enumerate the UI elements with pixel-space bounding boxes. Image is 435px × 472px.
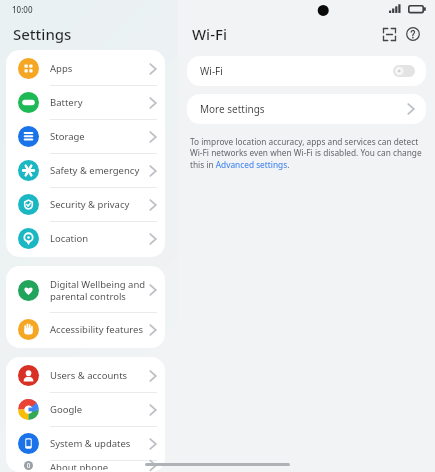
staticText: Users & accounts — [50, 369, 148, 382]
staticText: Google — [50, 403, 148, 416]
staticText: Storage — [50, 130, 148, 143]
staticText: Settings — [13, 24, 72, 44]
staticText: Wi-Fi — [200, 64, 393, 78]
staticText: Digital Wellbeing and parental controls — [50, 278, 148, 303]
button[interactable]: More settings — [187, 94, 426, 124]
staticText: More settings — [200, 102, 406, 116]
button[interactable]: Storage — [6, 120, 165, 154]
button[interactable]: Digital Wellbeing and parental controls — [6, 268, 165, 313]
button[interactable]: Security & privacy — [6, 188, 165, 222]
button[interactable]: System & updates — [6, 427, 165, 461]
button[interactable]: Google — [6, 393, 165, 427]
staticText: About phone — [50, 461, 148, 470]
button[interactable]: Apps — [6, 52, 165, 86]
button[interactable]: Battery — [6, 86, 165, 120]
staticText: Location — [50, 232, 148, 245]
staticText: Battery — [50, 96, 148, 109]
staticText: Security & privacy — [50, 198, 148, 211]
staticText: Safety & emergency — [50, 164, 148, 177]
button[interactable]: Wi-Fi — [187, 56, 426, 86]
button[interactable]: Scan QR code — [377, 22, 401, 46]
staticText: Accessibility features — [50, 323, 148, 336]
button[interactable]: Safety & emergency — [6, 154, 165, 188]
button[interactable]: Users & accounts — [6, 359, 165, 393]
staticText: Wi-Fi — [192, 24, 377, 44]
button[interactable]: About phone — [6, 461, 165, 470]
button[interactable]: Accessibility features — [6, 313, 165, 346]
staticText: System & updates — [50, 437, 148, 450]
staticText: 10:00 — [12, 4, 33, 15]
staticText: To improve location accuracy, apps and s… — [190, 136, 423, 170]
button[interactable]: Help — [401, 22, 425, 46]
staticText: Apps — [50, 62, 148, 75]
button[interactable]: Location — [6, 222, 165, 255]
